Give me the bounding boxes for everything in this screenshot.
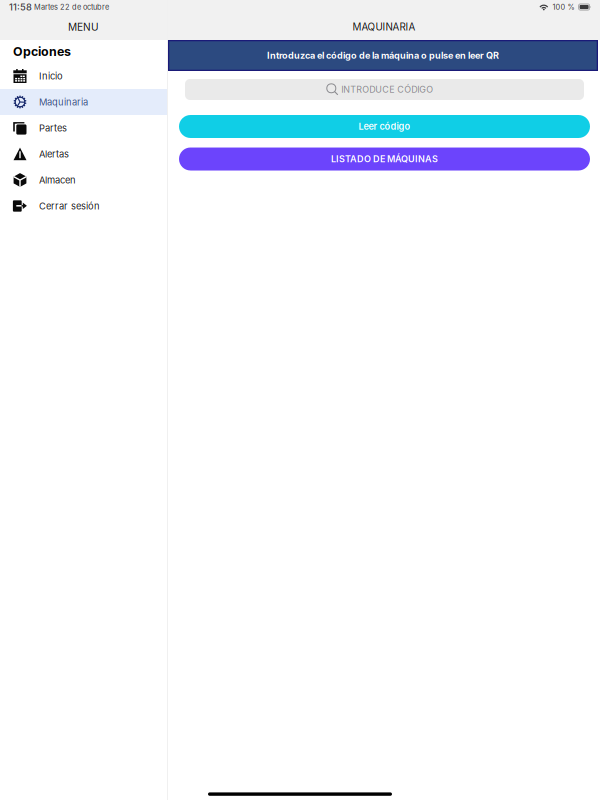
staticText: Introduzca el código de la máquina o pul… <box>267 50 499 61</box>
staticText: INTRODUCE CÓDIGO <box>341 84 433 95</box>
button[interactable]: Almacen <box>0 167 167 193</box>
staticText: Maquinaria <box>39 96 88 108</box>
staticText: MENU <box>68 21 99 33</box>
button[interactable]: Inicio <box>0 63 167 89</box>
staticText: 11:58 <box>9 1 32 13</box>
staticText: Martes 22 de octubre <box>34 2 109 11</box>
button[interactable]: Maquinaria <box>0 89 167 115</box>
staticText: MAQUINARIA <box>352 21 415 33</box>
staticText: Almacen <box>39 174 76 186</box>
staticText: 100 % <box>553 2 575 11</box>
staticText: Cerrar sesión <box>39 200 100 212</box>
staticText: LISTADO DE MÁQUINAS <box>331 153 438 164</box>
button[interactable]: LISTADO DE MÁQUINAS <box>179 147 590 170</box>
staticText: Leer código <box>358 121 410 132</box>
button[interactable]: INTRODUCE CÓDIGO <box>185 79 584 100</box>
button[interactable]: Alertas <box>0 141 167 167</box>
staticText: Alertas <box>39 148 69 160</box>
staticText: Partes <box>39 122 67 134</box>
button[interactable]: Leer código <box>179 115 590 138</box>
button[interactable]: Cerrar sesión <box>0 193 167 219</box>
staticText: Inicio <box>39 70 63 82</box>
staticText: Opciones <box>13 44 71 59</box>
button[interactable]: Partes <box>0 115 167 141</box>
